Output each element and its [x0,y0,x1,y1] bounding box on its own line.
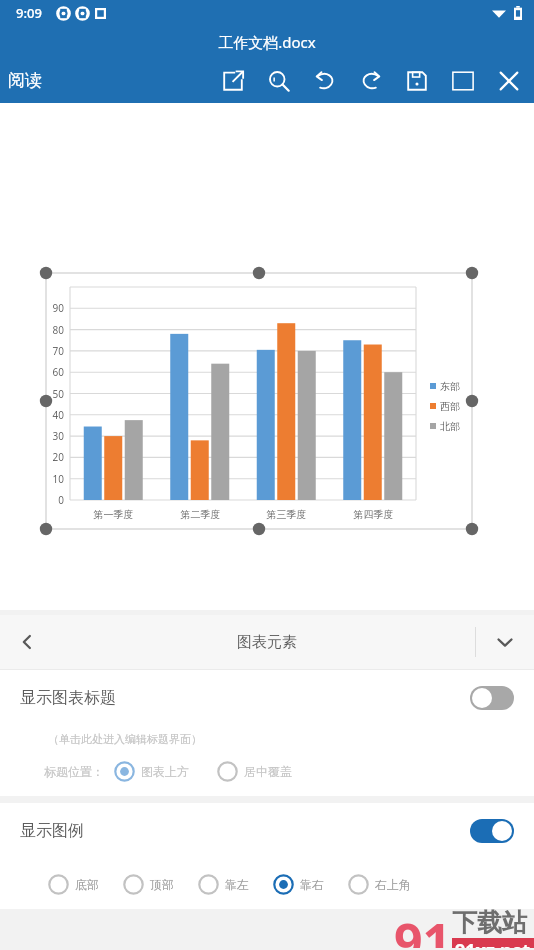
staticText: 10 [0,472,64,486]
button[interactable]: 显示图例 [0,803,534,859]
staticText: 9:09 [16,4,42,22]
button[interactable]: 顶部 [123,874,174,895]
staticText: 靠左 [225,877,249,892]
button[interactable]: Page count [440,58,486,103]
staticText: 图表元素 [237,633,297,652]
staticText: 图表上方 [141,764,189,779]
button[interactable]: 靠右 [273,874,324,895]
button[interactable]: 靠左 [198,874,249,895]
staticText: 工作文档.docx [218,32,316,52]
staticText: 下载站 [452,907,527,938]
staticText: 80 [0,323,64,337]
staticText: 顶部 [150,877,174,892]
staticText: 显示图表标题 [20,688,470,708]
button[interactable]: Toggle off [470,686,514,710]
staticText: 底部 [75,877,99,892]
staticText: 东部 [440,380,460,393]
staticText: 居中覆盖 [244,764,292,779]
staticText: 50 [0,387,64,401]
button[interactable]: 底部 [48,874,99,895]
staticText: 北部 [440,420,460,433]
staticText: 阅读 [8,70,42,91]
button[interactable]: 显示图表标题 [0,670,534,726]
staticText: 右上角 [375,877,411,892]
staticText: 第四季度 [330,508,417,521]
staticText: 显示图例 [20,821,470,841]
button[interactable]: 图表上方 [114,761,189,782]
button[interactable]: Search [256,58,302,103]
staticText: 20 [0,450,64,464]
button[interactable]: Redo [348,58,394,103]
staticText: 靠右 [300,877,324,892]
button[interactable]: 阅读 [0,64,50,97]
button[interactable]: Close [486,58,532,103]
button[interactable]: 居中覆盖 [217,761,292,782]
button[interactable]: Bar chart [0,103,534,610]
button[interactable]: Back [0,615,54,669]
button[interactable]: Save [394,58,440,103]
staticText: 第二季度 [157,508,244,521]
staticText: 91xz.net [455,938,531,948]
button[interactable]: Undo [302,58,348,103]
staticText: 90 [0,301,64,315]
staticText: 60 [0,365,64,379]
staticText: 第三季度 [243,508,330,521]
staticText: 西部 [440,400,460,413]
staticText: 40 [0,408,64,422]
staticText: 标题位置： [44,764,104,779]
button[interactable]: Share [210,58,256,103]
staticText: 91 [394,907,452,948]
staticText: 30 [0,429,64,443]
staticText: 第一季度 [70,508,157,521]
staticText: 70 [0,344,64,358]
button[interactable]: 右上角 [348,874,411,895]
button[interactable]: Collapse [476,615,534,669]
button[interactable]: （单击此处进入编辑标题界面） [48,732,202,746]
button[interactable]: Toggle on [470,819,514,843]
staticText: 0 [0,493,64,507]
